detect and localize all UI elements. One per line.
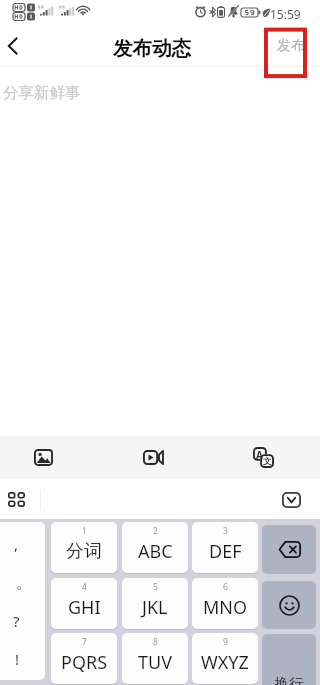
button[interactable]: 1 (51, 522, 117, 573)
staticText: 。 (16, 574, 31, 593)
button[interactable]: Add photo (21, 436, 66, 479)
button[interactable]: Back (0, 24, 26, 67)
staticText: 8 (153, 636, 158, 648)
button[interactable]: Add video (131, 436, 176, 479)
button[interactable]: 8 (122, 633, 188, 684)
staticText: 6 (223, 581, 228, 593)
staticText: 分享新鲜事 (3, 83, 81, 103)
button[interactable]: 5 (122, 578, 188, 629)
button[interactable]: Emoji (262, 581, 316, 629)
staticText: ABC (138, 539, 173, 564)
staticText: 换行 (274, 675, 304, 685)
staticText: 4 (82, 581, 87, 593)
button[interactable]: Input methods (0, 479, 32, 520)
button[interactable]: 发布 (272, 24, 306, 67)
button[interactable]: 2 (122, 522, 188, 573)
staticText: 发布 (277, 37, 305, 55)
staticText: A (256, 448, 263, 462)
staticText: ? (13, 611, 20, 631)
button[interactable]: 4 (51, 578, 117, 629)
button[interactable]: 3 (192, 522, 258, 573)
staticText: TUV (138, 650, 172, 675)
staticText: 分词 (66, 540, 102, 563)
staticText: 15:59 (270, 6, 301, 22)
button[interactable]: Translate (241, 436, 286, 479)
staticText: ! (15, 649, 20, 669)
button[interactable]: 7 (51, 633, 117, 684)
staticText: 2 (153, 525, 158, 537)
button[interactable]: 换行 (262, 634, 316, 685)
button[interactable]: Punctuation (0, 522, 45, 680)
staticText: 发布动态 (113, 36, 191, 61)
staticText: 9 (223, 636, 228, 648)
staticText: , (14, 534, 19, 554)
staticText: 7 (82, 636, 87, 648)
staticText: WXYZ (201, 650, 249, 675)
staticText: 3 (223, 525, 228, 537)
staticText: MNO (203, 595, 248, 620)
staticText: DEF (209, 539, 242, 564)
staticText: JKL (142, 595, 168, 620)
button[interactable]: 9 (192, 633, 258, 684)
staticText: 文 (263, 456, 272, 467)
staticText: 5 (153, 581, 158, 593)
staticText: PQRS (61, 650, 108, 675)
staticText: 1 (82, 525, 87, 537)
button[interactable]: Hide keyboard (274, 479, 308, 520)
button[interactable]: Backspace (262, 525, 316, 574)
staticText: GHI (68, 595, 101, 620)
button[interactable]: 6 (192, 578, 258, 629)
